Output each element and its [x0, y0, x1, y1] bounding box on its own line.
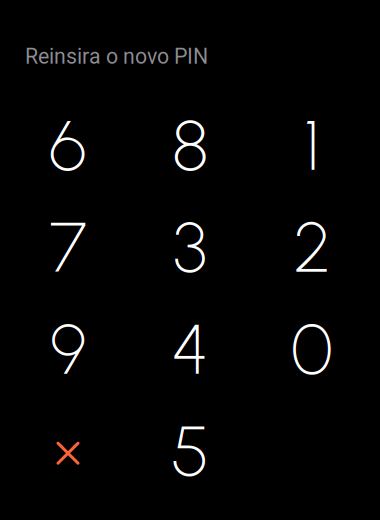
button[interactable]: 1	[251, 94, 373, 196]
button[interactable]: 2	[251, 196, 373, 298]
button[interactable]: 9	[7, 298, 129, 400]
button[interactable]: 7	[7, 196, 129, 298]
staticText: 0	[291, 306, 333, 391]
button[interactable]: Apagar	[7, 400, 129, 502]
staticText: 5	[171, 408, 209, 493]
button[interactable]: 0	[251, 298, 373, 400]
staticText: 8	[172, 103, 208, 188]
button[interactable]: 4	[129, 298, 251, 400]
staticText: 6	[49, 103, 87, 188]
staticText: 9	[50, 306, 86, 391]
staticText: 4	[171, 306, 208, 391]
staticText: Reinsira o novo PIN	[25, 44, 208, 69]
button[interactable]: 5	[129, 400, 251, 502]
button[interactable]: 8	[129, 94, 251, 196]
button[interactable]: 6	[7, 94, 129, 196]
staticText: 3	[173, 205, 207, 289]
staticText: 2	[293, 205, 330, 289]
staticText: 1	[304, 103, 320, 188]
button[interactable]: 3	[129, 196, 251, 298]
staticText: 7	[49, 205, 86, 289]
